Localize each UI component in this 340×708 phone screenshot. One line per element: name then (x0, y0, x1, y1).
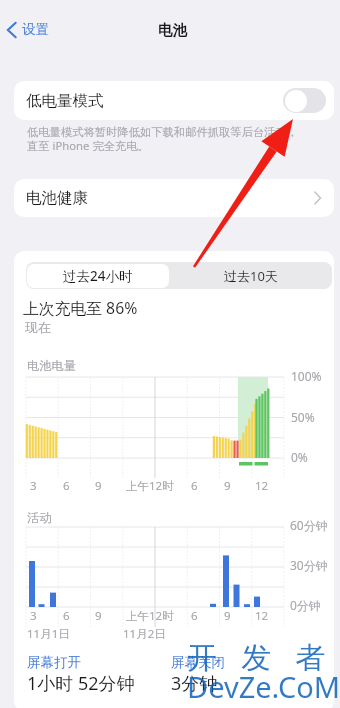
staticText: 11月1日 (27, 626, 70, 642)
staticText: 屏幕打开 (27, 654, 81, 671)
staticText: 上次充电至 86% (23, 297, 138, 319)
staticText: 11月2日 (123, 626, 166, 642)
staticText: 低电量模式将暂时降低如下载和邮件抓取等后台活动， 直至 iPhone 完全充电。 (27, 125, 299, 153)
staticText: 现在 (25, 319, 51, 335)
staticText: 电池电量 (27, 358, 77, 373)
staticText: 6 (63, 608, 70, 624)
staticText: 过去10天 (224, 267, 278, 285)
staticText: 过去24小时 (63, 267, 133, 285)
staticText: 3 (30, 478, 37, 494)
button[interactable]: Low Power Mode toggle, off (283, 88, 326, 113)
staticText: 电池健康 (26, 188, 314, 208)
staticText: 1小时 52分钟 (27, 671, 135, 696)
button[interactable]: 低电量模式 (14, 81, 334, 120)
staticText: 6 (191, 478, 198, 494)
staticText: 9 (224, 608, 231, 624)
staticText: 60分钟 (290, 517, 328, 533)
button[interactable]: 过去10天 (169, 262, 332, 289)
button[interactable]: 过去24小时 (27, 264, 169, 288)
staticText: 屏幕关闭 (171, 654, 225, 671)
staticText: 0% (291, 449, 308, 465)
staticText: 活动 (27, 510, 52, 525)
staticText: 设置 (22, 21, 49, 38)
staticText: DevZe.CoM (187, 667, 340, 706)
staticText: 12 (255, 608, 269, 624)
staticText: 9 (95, 478, 102, 494)
staticText: 12 (255, 478, 269, 494)
staticText: 100% (291, 368, 322, 384)
staticText: 6 (63, 478, 70, 494)
staticText: 电池 (158, 21, 187, 39)
staticText: 30分钟 (290, 557, 328, 573)
staticText: 开发者 (187, 639, 340, 677)
staticText: 3 (30, 608, 37, 624)
staticText: 50% (291, 409, 315, 425)
button[interactable]: 电池健康 (14, 179, 334, 217)
staticText: 低电量模式 (26, 91, 104, 111)
staticText: 9 (224, 478, 231, 494)
staticText: 9 (95, 608, 102, 624)
staticText: 上午12时 (126, 608, 174, 624)
button[interactable]: 设置 (4, 18, 51, 41)
staticText: 上午12时 (126, 478, 174, 494)
staticText: 3分钟 (171, 671, 218, 696)
staticText: 0分钟 (290, 597, 321, 613)
staticText: 6 (191, 608, 198, 624)
